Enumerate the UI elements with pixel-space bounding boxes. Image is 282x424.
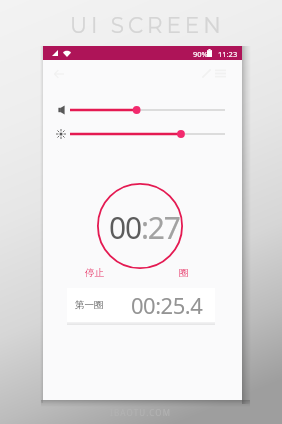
button[interactable]: 停止 — [85, 267, 104, 279]
staticText: UI SCREEN — [70, 12, 225, 38]
staticText: 00 — [109, 207, 141, 248]
staticText: 90% — [193, 49, 208, 59]
button[interactable]: 圈 — [179, 267, 189, 279]
staticText: 停止 — [85, 267, 104, 279]
button[interactable]: Edit — [201, 68, 212, 79]
staticText: IBAOTU.COM — [110, 407, 172, 418]
button[interactable]: Back — [53, 68, 65, 80]
staticText: 圈 — [179, 267, 189, 279]
button[interactable] — [70, 104, 225, 116]
staticText: :27 — [141, 207, 180, 248]
button[interactable] — [70, 128, 225, 140]
button[interactable]: 第一圈 — [67, 288, 215, 322]
staticText: 第一圈 — [75, 299, 104, 311]
staticText: 00:25.4 — [131, 290, 203, 320]
button[interactable]: Menu — [215, 68, 226, 79]
staticText: 11:23 — [218, 49, 238, 59]
